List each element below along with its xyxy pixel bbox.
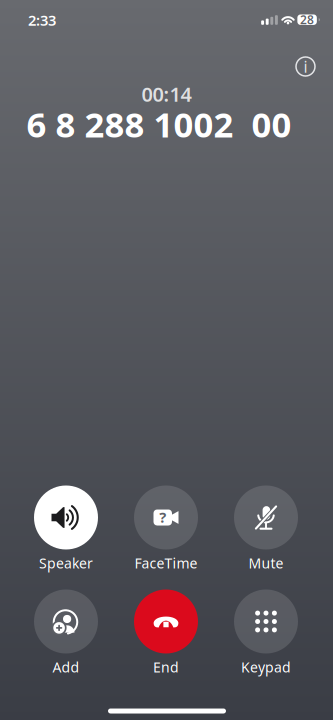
button[interactable]: FaceTime [116,485,216,573]
button[interactable]: Speaker [16,485,116,573]
staticText: ? [159,507,166,527]
button[interactable]: Add call [16,589,116,677]
staticText: 6 8 288 1002 00 [26,100,291,148]
button[interactable]: End call [116,589,216,677]
staticText: 00:14 [141,80,191,108]
staticText: i [303,56,307,77]
staticText: Keypad [241,657,291,677]
button[interactable]: Call details [283,44,327,88]
staticText: 28 [300,11,314,28]
button[interactable]: Keypad [216,589,316,677]
staticText: End [153,657,179,677]
button[interactable]: Mute [216,485,316,573]
staticText: Add [52,657,79,677]
staticText: Speaker [39,553,93,573]
staticText: FaceTime [134,553,197,573]
staticText: 2:33 [28,10,56,30]
staticText: Mute [248,553,283,573]
